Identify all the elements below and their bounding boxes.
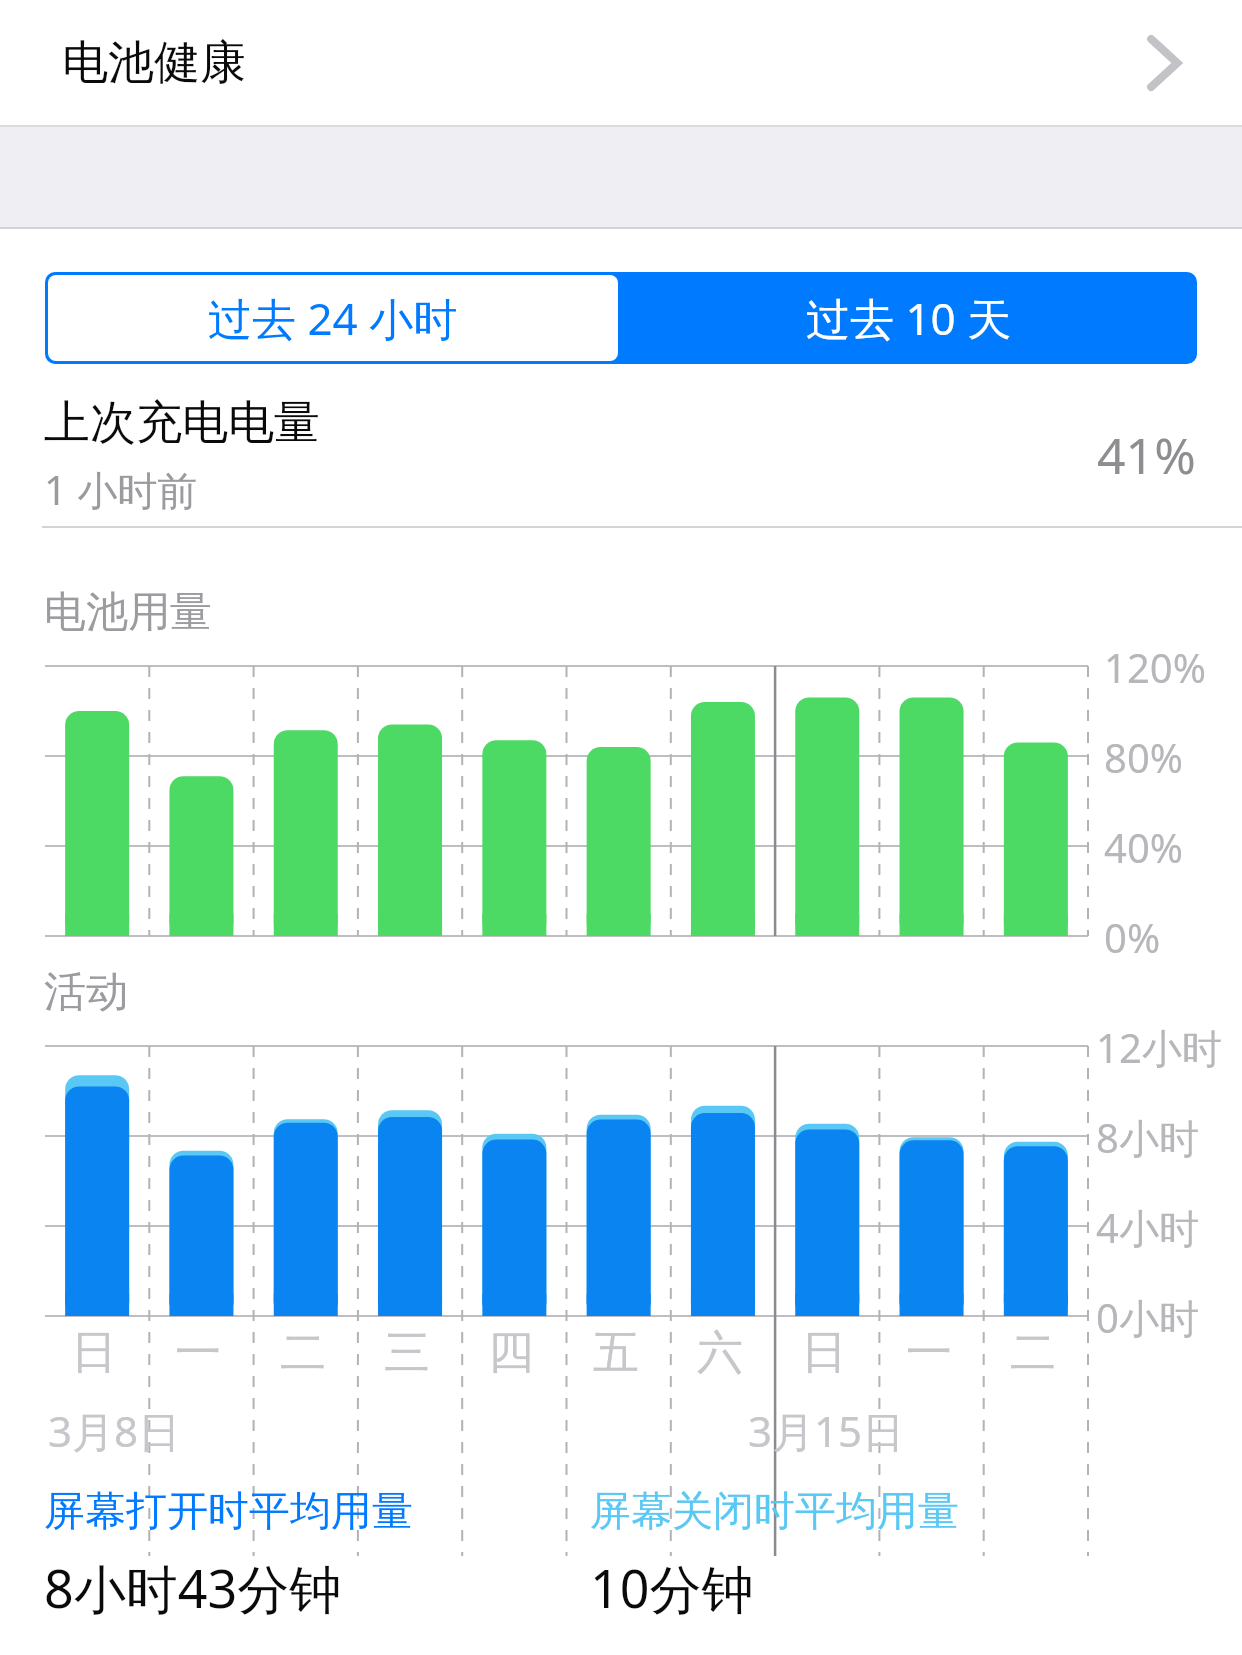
staticText: 4小时 — [1096, 1200, 1199, 1255]
staticText: 日 — [801, 1324, 847, 1382]
staticText: 80% — [1104, 730, 1183, 784]
button[interactable]: 过去 10 天 — [621, 272, 1197, 364]
staticText: 电池用量 — [44, 586, 212, 639]
staticText: 四 — [488, 1324, 534, 1382]
button[interactable]: 过去 24 小时 — [48, 275, 618, 361]
button[interactable]: 电池健康 — [0, 0, 1242, 125]
staticText: 41% — [1097, 421, 1196, 489]
staticText: 二 — [1010, 1324, 1056, 1382]
staticText: 10分钟 — [590, 1552, 754, 1623]
staticText: 过去 24 小时 — [208, 288, 458, 348]
staticText: 40% — [1104, 820, 1183, 874]
staticText: 活动 — [44, 966, 128, 1019]
staticText: 3月8日 — [48, 1402, 181, 1459]
staticText: 1 小时前 — [44, 462, 198, 517]
staticText: 屏幕打开时平均用量 — [44, 1486, 413, 1538]
staticText: 日 — [71, 1324, 117, 1382]
staticText: 一 — [175, 1324, 221, 1382]
staticText: 过去 10 天 — [806, 288, 1012, 348]
staticText: 一 — [906, 1324, 952, 1382]
staticText: 8小时43分钟 — [44, 1552, 342, 1623]
staticText: 8小时 — [1096, 1110, 1199, 1165]
button[interactable]: 电池健康详情 — [1118, 18, 1208, 108]
staticText: 电池健康 — [62, 34, 246, 92]
button[interactable]: 上次充电电量 — [0, 384, 1242, 526]
staticText: 12小时 — [1096, 1020, 1222, 1075]
staticText: 屏幕关闭时平均用量 — [590, 1486, 959, 1538]
staticText: 五 — [593, 1324, 639, 1382]
staticText: 上次充电电量 — [44, 394, 320, 452]
staticText: 3月15日 — [748, 1402, 905, 1459]
staticText: 二 — [280, 1324, 326, 1382]
staticText: 三 — [384, 1324, 430, 1382]
staticText: 0% — [1104, 910, 1161, 964]
staticText: 六 — [697, 1324, 743, 1382]
staticText: 120% — [1104, 640, 1206, 694]
staticText: 0小时 — [1096, 1290, 1199, 1345]
